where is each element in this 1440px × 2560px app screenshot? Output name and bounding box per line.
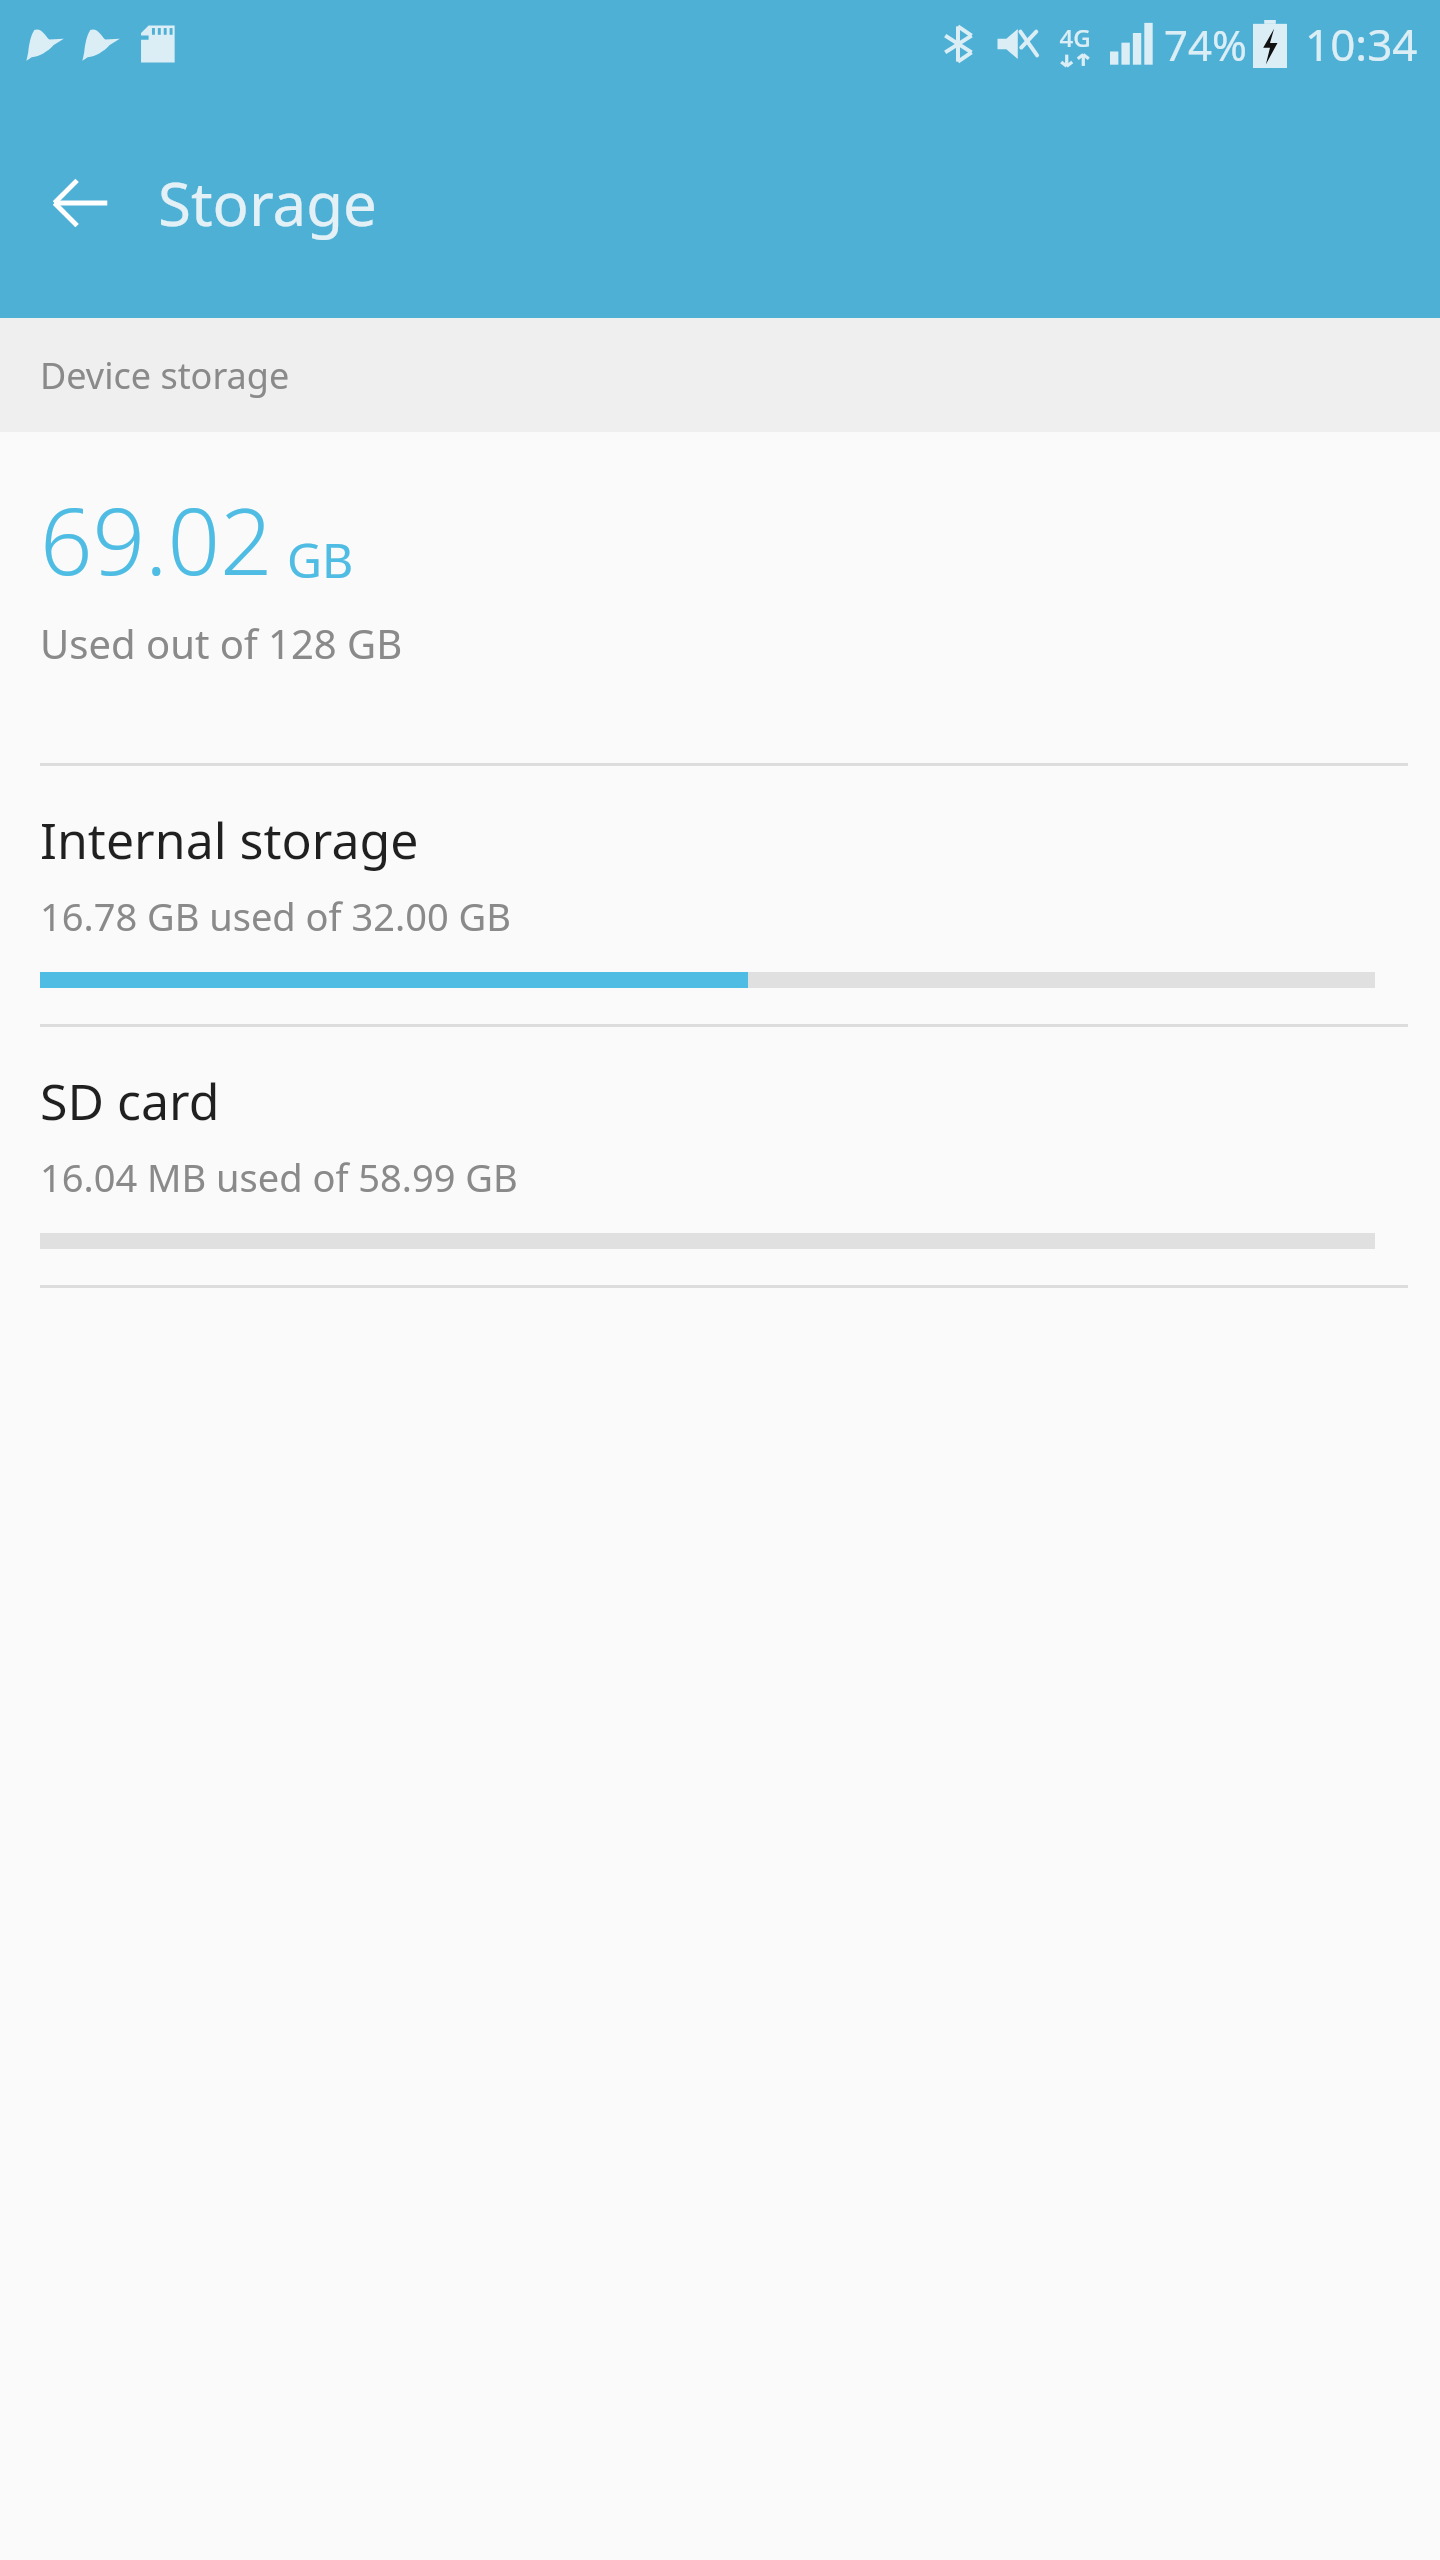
staticText: 16.04 MB used of 58.99 GB <box>40 1151 518 1203</box>
staticText: 10:34 <box>1305 14 1418 74</box>
button[interactable]: Internal storage <box>0 766 1440 1024</box>
staticText: Device storage <box>40 351 290 400</box>
staticText: Internal storage <box>40 806 419 874</box>
staticText: Storage <box>158 162 377 244</box>
staticText: 69.02 <box>40 477 273 602</box>
staticText: Used out of 128 GB <box>40 616 403 670</box>
staticText: 74% <box>1164 16 1247 73</box>
button[interactable]: Back <box>32 155 128 251</box>
staticText: 16.78 GB used of 32.00 GB <box>40 890 511 942</box>
staticText: SD card <box>40 1067 220 1135</box>
staticText: GB <box>287 527 354 592</box>
staticText: 4G <box>1059 21 1091 54</box>
button[interactable]: SD card <box>0 1027 1440 1285</box>
